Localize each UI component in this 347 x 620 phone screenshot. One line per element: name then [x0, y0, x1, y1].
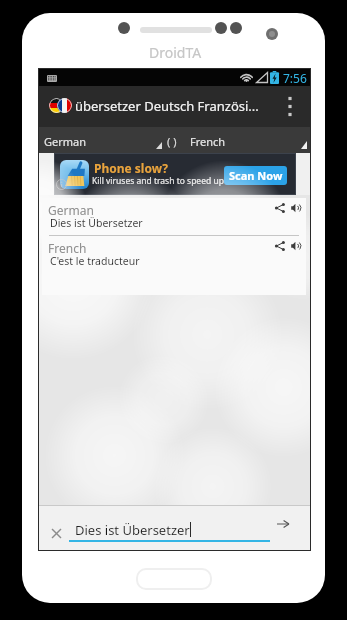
button[interactable]: German [42, 198, 306, 235]
staticText: Scan Now [229, 168, 283, 183]
staticText: DroidTA [149, 43, 202, 62]
staticText: C'est le traducteur [50, 254, 140, 268]
staticText: Dies ist Übersetzer [50, 216, 143, 230]
staticText: German [48, 202, 94, 218]
button[interactable]: Scan Now [224, 166, 287, 185]
button[interactable]: Listen [291, 241, 301, 251]
staticText: Phone slow? [94, 160, 168, 176]
button[interactable]: French [42, 236, 306, 273]
staticText: ( ) [167, 134, 177, 149]
staticText: übersetzer Deutsch Französi... [75, 97, 259, 115]
button[interactable]: Listen [291, 203, 301, 213]
button[interactable]: Translate [270, 511, 296, 537]
staticText: Dies ist Übersetzer [75, 521, 190, 539]
button[interactable]: French [186, 127, 311, 153]
button[interactable]: German [38, 127, 168, 153]
staticText: French [190, 134, 226, 149]
button[interactable]: Clear text [44, 521, 68, 545]
button[interactable]: Phone slow? [54, 153, 296, 195]
button[interactable]: Share [275, 241, 285, 251]
staticText: French [48, 240, 87, 256]
button[interactable]: Share [275, 203, 285, 213]
button[interactable]: More options [278, 86, 302, 127]
staticText: German [44, 134, 87, 149]
staticText: 7:56 [283, 70, 307, 86]
button[interactable]: übersetzer Deutsch Französi... [38, 86, 311, 127]
staticText: Kill viruses and trash to speed up [92, 175, 224, 187]
